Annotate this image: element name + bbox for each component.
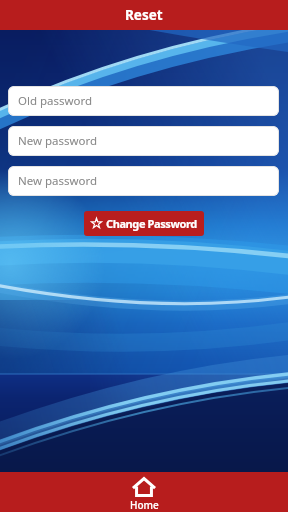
staticText: Change Password bbox=[106, 216, 197, 231]
staticText: Home bbox=[130, 498, 159, 512]
staticText: Old password bbox=[18, 93, 93, 109]
button[interactable]: Reset bbox=[0, 0, 288, 30]
button[interactable]: New password bbox=[8, 166, 279, 196]
staticText: Reset bbox=[125, 6, 163, 24]
button[interactable]: New password bbox=[8, 126, 279, 156]
staticText: New password bbox=[18, 173, 98, 189]
button[interactable]: Home bbox=[0, 472, 288, 512]
button[interactable]: Old password bbox=[8, 86, 279, 116]
button[interactable]: Change Password bbox=[84, 211, 204, 236]
staticText: New password bbox=[18, 133, 98, 149]
